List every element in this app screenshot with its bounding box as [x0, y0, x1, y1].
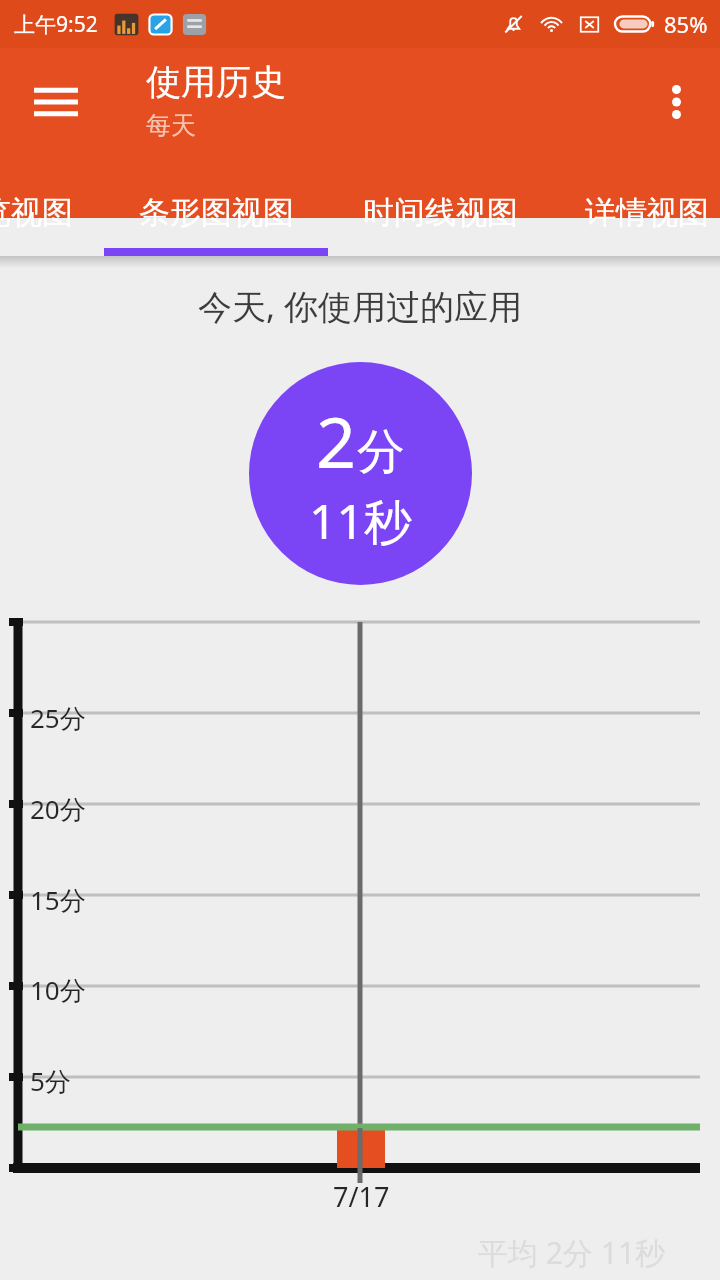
staticText: 使用历史 — [146, 60, 286, 104]
staticText: 11秒 — [309, 488, 412, 554]
staticText: 今天, 你使用过的应用 — [198, 283, 522, 329]
button[interactable]: 时间线视图 — [328, 168, 552, 256]
staticText: 85% — [664, 9, 708, 39]
staticText: 7/17 — [333, 1178, 390, 1215]
staticText: 时间线视图 — [363, 193, 518, 232]
staticText: 平均 2分 11秒 — [478, 1232, 666, 1273]
staticText: 条形图视图 — [139, 193, 294, 232]
staticText: 20分 — [30, 791, 86, 827]
button[interactable]: 条形图视图 — [104, 168, 328, 256]
button[interactable]: 详情视图 — [552, 168, 720, 256]
staticText: 5分 — [30, 1063, 71, 1099]
staticText: 25分 — [30, 700, 86, 736]
staticText: 概览视图 — [0, 193, 73, 232]
button[interactable]: More options — [648, 74, 704, 130]
staticText: 2 — [316, 393, 357, 488]
button[interactable]: 概览视图 — [0, 168, 78, 256]
button[interactable]: Open navigation drawer — [22, 68, 90, 136]
button[interactable]: 2 — [249, 362, 472, 585]
staticText: 详情视图 — [585, 193, 709, 232]
staticText: 每天 — [146, 110, 196, 141]
staticText: 15分 — [30, 882, 86, 918]
staticText: 上午9:52 — [14, 10, 98, 39]
staticText: 10分 — [30, 972, 86, 1008]
staticText: 分 — [357, 422, 405, 482]
